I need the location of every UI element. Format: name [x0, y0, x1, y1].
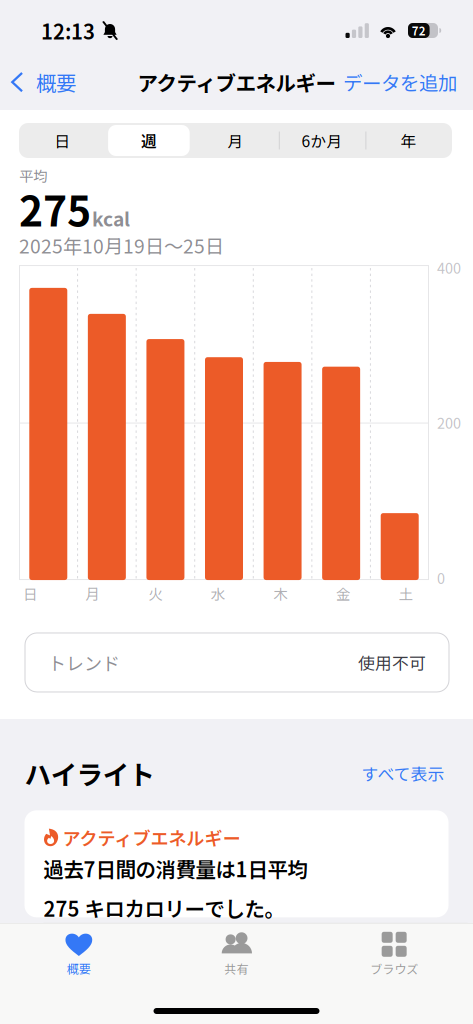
staticText: 木: [273, 583, 287, 604]
staticText: 過去7日間の消費量は1日平均: [43, 853, 307, 883]
staticText: 12:13: [41, 16, 95, 45]
staticText: 200: [437, 412, 461, 433]
staticText: 日: [54, 129, 70, 152]
staticText: 275 キロカロリーでした。: [43, 893, 284, 923]
staticText: 金: [336, 583, 350, 604]
staticText: 年: [401, 129, 417, 152]
button[interactable]: データを追加: [343, 60, 473, 104]
staticText: ハイライト: [24, 754, 154, 792]
button[interactable]: 概要: [0, 59, 76, 105]
button[interactable]: アクティブエネルギー: [24, 810, 448, 917]
staticText: 週: [141, 129, 157, 152]
staticText: 概要: [67, 960, 91, 977]
button[interactable]: 年: [365, 123, 452, 158]
staticText: 月: [86, 583, 100, 604]
staticText: アクティブエネルギー: [62, 824, 240, 850]
staticText: トレンド: [48, 649, 120, 675]
staticText: アクティブエネルギー: [137, 67, 335, 97]
staticText: 火: [148, 583, 162, 604]
staticText: 275: [19, 179, 91, 238]
staticText: 0: [437, 567, 445, 588]
button[interactable]: 日: [19, 123, 106, 158]
staticText: 土: [398, 583, 412, 604]
staticText: 水: [211, 583, 225, 604]
button[interactable]: トレンド: [25, 633, 449, 692]
staticText: データを追加: [343, 68, 457, 96]
staticText: 概要: [36, 67, 76, 97]
staticText: 日: [23, 583, 37, 604]
button[interactable]: 月: [192, 123, 279, 158]
button[interactable]: 6か月: [279, 123, 365, 158]
staticText: すべて表示: [361, 761, 444, 785]
button[interactable]: すべて表示: [361, 755, 444, 791]
staticText: 共有: [224, 960, 248, 977]
button[interactable]: 週: [106, 123, 192, 158]
staticText: 使用不可: [358, 650, 426, 675]
staticText: 2025年10月19日〜25日: [19, 231, 224, 259]
staticText: 400: [437, 257, 461, 278]
staticText: 72: [412, 22, 426, 39]
staticText: 月: [227, 129, 243, 152]
button[interactable]: 共有: [158, 930, 315, 978]
staticText: ブラウズ: [370, 960, 418, 977]
staticText: kcal: [92, 204, 130, 232]
button[interactable]: 概要: [0, 930, 158, 978]
staticText: 6か月: [302, 129, 343, 152]
staticText: 平均: [19, 165, 47, 186]
button[interactable]: ブラウズ: [315, 930, 473, 978]
